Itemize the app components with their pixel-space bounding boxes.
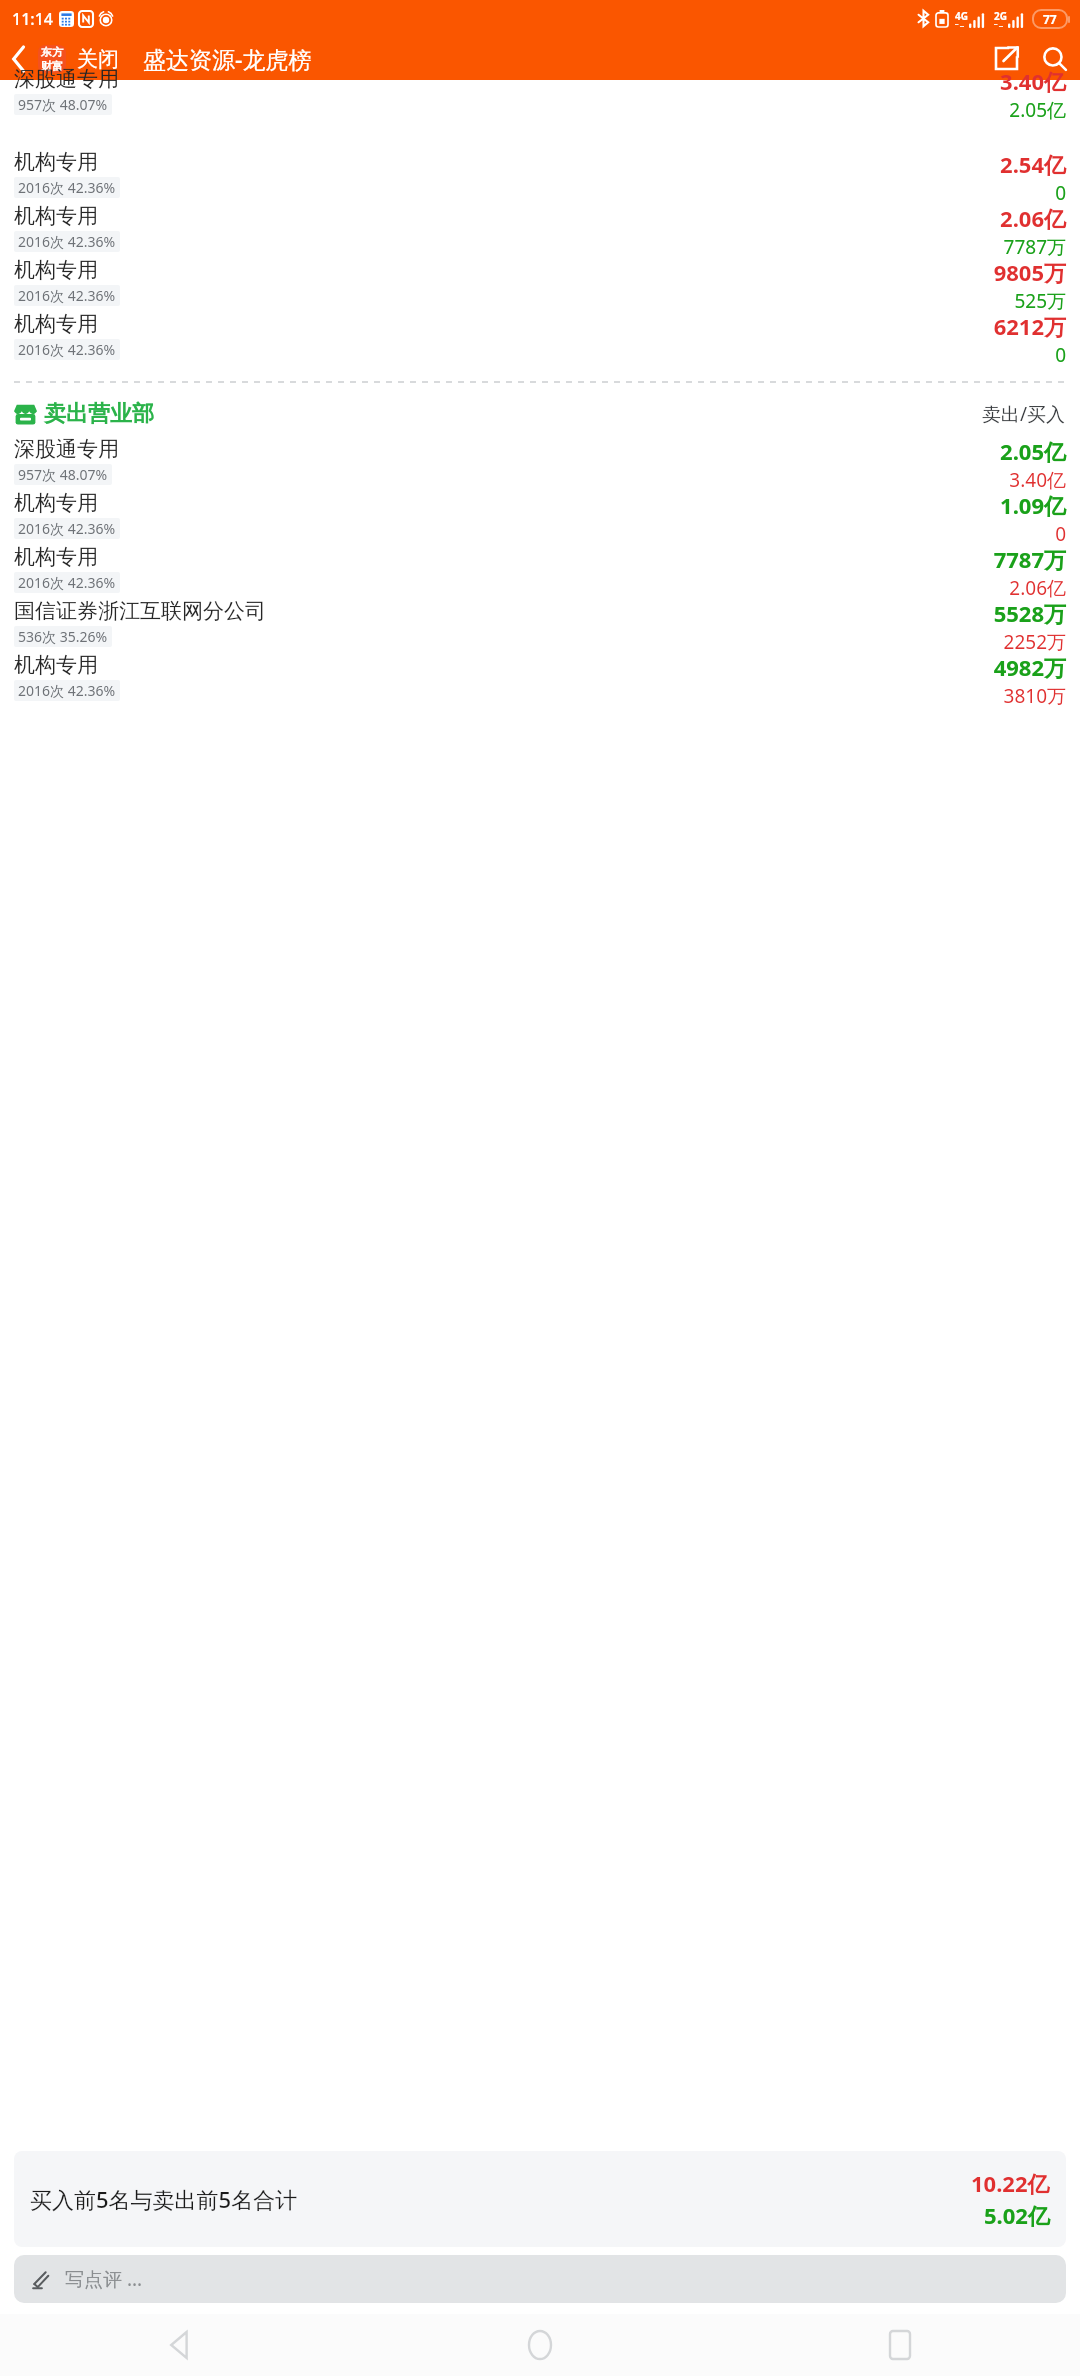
- staticText: 2.05亿: [1009, 97, 1066, 123]
- staticText: 0: [1055, 180, 1066, 203]
- staticText: 3.40亿: [1009, 467, 1066, 490]
- staticText: 机构专用: [14, 149, 98, 175]
- staticText: 536次 35.26%: [18, 627, 108, 646]
- staticText: 5528万: [993, 598, 1066, 628]
- button[interactable]: 机构专用: [0, 490, 1080, 544]
- staticText: 4G: [955, 9, 968, 23]
- staticText: 2.54亿: [1000, 149, 1066, 179]
- button[interactable]: Share: [982, 37, 1030, 80]
- staticText: 机构专用: [14, 257, 98, 283]
- button[interactable]: Recents: [720, 2314, 1080, 2376]
- staticText: 0: [1055, 521, 1066, 544]
- button[interactable]: 买入前5名与卖出前5名合计: [14, 2151, 1066, 2247]
- staticText: 深股通专用: [14, 436, 119, 462]
- staticText: 7787万: [1003, 234, 1066, 257]
- staticText: 东方: [41, 45, 63, 59]
- staticText: 关闭: [77, 46, 119, 72]
- staticText: 7787万: [993, 544, 1066, 574]
- button[interactable]: 深股通专用: [0, 436, 1080, 490]
- button[interactable]: 深股通专用: [0, 80, 1080, 149]
- staticText: 2016次 42.36%: [18, 286, 116, 305]
- button[interactable]: 机构专用: [0, 257, 1080, 311]
- button[interactable]: 关闭: [77, 46, 119, 72]
- button[interactable]: 机构专用: [0, 652, 1080, 706]
- staticText: 机构专用: [14, 544, 98, 570]
- staticText: 5.02亿: [984, 2200, 1050, 2230]
- staticText: 机构专用: [14, 203, 98, 229]
- button[interactable]: Home: [360, 2314, 720, 2376]
- staticText: 3.40亿: [1000, 66, 1066, 96]
- staticText: 9805万: [993, 257, 1066, 287]
- staticText: 2016次 42.36%: [18, 232, 116, 251]
- staticText: 2016次 42.36%: [18, 573, 116, 592]
- button[interactable]: 东方: [38, 45, 66, 73]
- staticText: 盛达资源-龙虎榜: [143, 43, 312, 74]
- staticText: 2016次 42.36%: [18, 340, 116, 359]
- staticText: 6212万: [993, 311, 1066, 341]
- staticText: 2G: [994, 9, 1007, 23]
- staticText: 写点评 ...: [65, 2266, 143, 2292]
- staticText: 10.22亿: [971, 2168, 1050, 2198]
- staticText: 2016次 42.36%: [18, 178, 116, 197]
- staticText: 2252万: [1003, 629, 1066, 652]
- staticText: 2.05亿: [1000, 436, 1066, 466]
- staticText: 77: [1043, 11, 1057, 27]
- staticText: 525万: [1014, 288, 1066, 311]
- staticText: 买入前5名与卖出前5名合计: [30, 2184, 298, 2214]
- staticText: 11:14: [12, 8, 53, 30]
- staticText: 机构专用: [14, 490, 98, 516]
- staticText: 2.06亿: [1000, 203, 1066, 233]
- staticText: 2016次 42.36%: [18, 519, 116, 538]
- staticText: 957次 48.07%: [18, 465, 108, 484]
- staticText: 0: [1055, 342, 1066, 365]
- staticText: 国信证券浙江互联网分公司: [14, 598, 266, 624]
- button[interactable]: 机构专用: [0, 203, 1080, 257]
- button[interactable]: 机构专用: [0, 544, 1080, 598]
- staticText: 卖出/买入: [982, 401, 1066, 427]
- staticText: 机构专用: [14, 311, 98, 337]
- staticText: 深股通专用: [14, 66, 119, 92]
- staticText: 1.09亿: [1000, 490, 1066, 520]
- staticText: 卖出营业部: [44, 400, 154, 428]
- staticText: 4982万: [993, 652, 1066, 682]
- button[interactable]: Back: [0, 2314, 360, 2376]
- staticText: 3810万: [1003, 683, 1066, 706]
- staticText: 2016次 42.36%: [18, 681, 116, 700]
- button[interactable]: 国信证券浙江互联网分公司: [0, 598, 1080, 652]
- staticText: 财富: [41, 59, 63, 73]
- button[interactable]: 机构专用: [0, 311, 1080, 365]
- staticText: 2.06亿: [1009, 575, 1066, 598]
- button[interactable]: Back: [0, 37, 38, 80]
- staticText: 957次 48.07%: [18, 95, 108, 114]
- button[interactable]: Search: [1030, 37, 1080, 80]
- button[interactable]: 机构专用: [0, 149, 1080, 203]
- button[interactable]: 写点评 ...: [14, 2255, 1066, 2303]
- staticText: 机构专用: [14, 652, 98, 678]
